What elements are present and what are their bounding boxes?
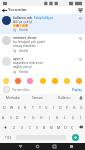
staticText: P xyxy=(66,105,69,110)
button[interactable]: ayse_k xyxy=(0,55,85,76)
staticText: U xyxy=(45,105,48,110)
staticText: A xyxy=(2,115,5,120)
button[interactable]: U xyxy=(43,102,50,112)
staticText: I xyxy=(53,105,55,110)
button[interactable]: G xyxy=(29,112,37,122)
button[interactable]: S xyxy=(7,112,14,122)
button[interactable]: Ş xyxy=(69,112,77,122)
staticText: M xyxy=(57,125,61,130)
button[interactable]: Filter xyxy=(76,6,84,14)
button[interactable]: Emoji xyxy=(64,78,70,84)
staticText: Z xyxy=(13,125,15,130)
button[interactable]: N xyxy=(48,122,55,132)
staticText: Yanıtla xyxy=(19,70,29,74)
button[interactable]: Backspace xyxy=(76,122,85,132)
staticText: Ö xyxy=(64,125,67,130)
staticText: W xyxy=(10,105,14,110)
button[interactable]: Recents xyxy=(46,143,63,150)
staticText: 2g xyxy=(13,70,17,74)
button[interactable]: Voice input xyxy=(77,94,85,102)
button[interactable]: Keyboard switcher xyxy=(63,143,80,150)
button[interactable]: K xyxy=(53,112,61,122)
staticText: ?123 xyxy=(5,136,12,140)
button[interactable]: P xyxy=(64,102,71,112)
staticText: Yanıtla xyxy=(19,49,29,53)
button[interactable]: Ü xyxy=(78,102,85,112)
staticText: N xyxy=(50,125,53,130)
button[interactable]: mehmet_demir xyxy=(0,34,85,55)
button[interactable]: ?123 xyxy=(1,133,15,142)
staticText: X xyxy=(21,125,23,130)
button[interactable]: M xyxy=(55,122,62,132)
staticText: B xyxy=(43,125,46,130)
button[interactable]: Emoji xyxy=(15,78,21,84)
button[interactable]: Shift xyxy=(0,122,10,132)
button[interactable]: X xyxy=(18,122,26,132)
button[interactable]: Emoji xyxy=(27,78,33,84)
button[interactable]: I xyxy=(50,102,57,112)
button[interactable]: İ xyxy=(77,112,85,122)
button[interactable]: Emoji xyxy=(76,78,82,84)
button[interactable]: V xyxy=(34,122,41,132)
staticText: ayse_k xyxy=(13,57,24,61)
button[interactable]: E xyxy=(15,102,22,112)
button[interactable]: Emoji xyxy=(52,78,58,84)
staticText: C xyxy=(29,125,32,130)
button[interactable]: Ö xyxy=(62,122,69,132)
staticText: K xyxy=(56,115,59,120)
staticText: T xyxy=(32,105,34,110)
button[interactable]: Emoji xyxy=(40,78,46,84)
staticText: H xyxy=(40,115,43,120)
staticText: S xyxy=(10,115,12,120)
staticText: mehmet_demir xyxy=(13,36,37,40)
staticText: Yorumlar xyxy=(8,7,27,13)
button[interactable]: Enter xyxy=(72,134,79,141)
button[interactable]: F xyxy=(21,112,29,122)
staticText: 2g xyxy=(13,49,17,53)
button[interactable]: kullanıcı_adı xyxy=(0,14,85,34)
button[interactable]: Home xyxy=(29,143,46,150)
button[interactable]: Like xyxy=(78,57,83,62)
button[interactable]: D xyxy=(14,112,21,122)
button[interactable]: Y xyxy=(36,102,43,112)
button[interactable]: Back xyxy=(0,6,8,14)
button[interactable]: Like xyxy=(78,36,83,41)
button[interactable]: C xyxy=(26,122,34,132)
button[interactable]: Yorum ekle... xyxy=(12,88,72,92)
button[interactable]: T xyxy=(29,102,36,112)
staticText: İ xyxy=(80,115,82,120)
button[interactable]: W xyxy=(8,102,15,112)
staticText: J xyxy=(49,115,50,120)
button[interactable]: Q xyxy=(0,102,8,112)
staticText: 2g xyxy=(13,28,17,32)
button[interactable]: B xyxy=(41,122,48,132)
button[interactable]: Tamam xyxy=(25,94,51,102)
button[interactable]: L xyxy=(61,112,69,122)
staticText: G xyxy=(32,115,35,120)
button[interactable]: Merhaba xyxy=(0,94,25,102)
button[interactable]: Paylaş xyxy=(72,88,82,92)
button[interactable]: Emoji xyxy=(3,78,9,84)
button[interactable]: J xyxy=(45,112,53,122)
button[interactable]: Ğ xyxy=(71,102,78,112)
staticText: V xyxy=(36,125,39,130)
button[interactable]: Back xyxy=(11,143,29,150)
staticText: L xyxy=(64,115,66,120)
button[interactable]: A xyxy=(0,112,7,122)
button[interactable]: H xyxy=(37,112,45,122)
button[interactable]: Ç xyxy=(69,122,76,132)
staticText: E xyxy=(18,105,20,110)
staticText: Kullanıcı xyxy=(58,96,71,100)
button[interactable]: Z xyxy=(10,122,18,132)
button[interactable]: Kullanıcı xyxy=(51,94,77,102)
staticText: Merhaba xyxy=(6,96,20,100)
staticText: Aslı'ya çok iyi xyxy=(13,20,33,24)
staticText: Tamam xyxy=(32,96,44,100)
staticText: Ğ xyxy=(73,105,76,110)
staticText: Q xyxy=(3,105,6,110)
button[interactable]: O xyxy=(57,102,64,112)
button[interactable]: Like xyxy=(78,16,83,21)
staticText: O xyxy=(59,105,62,110)
button[interactable]: R xyxy=(22,102,29,112)
